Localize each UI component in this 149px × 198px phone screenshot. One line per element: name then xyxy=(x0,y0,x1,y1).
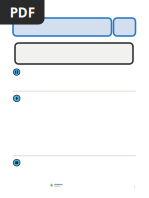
staticText: 1 xyxy=(133,184,136,191)
staticText: PDF xyxy=(10,3,35,21)
